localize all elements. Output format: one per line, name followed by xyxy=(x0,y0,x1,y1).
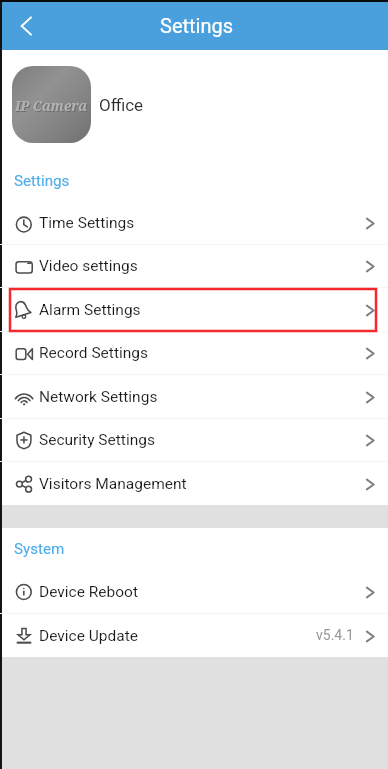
button[interactable]: Device Update xyxy=(0,614,388,658)
staticText: IP Camera xyxy=(15,97,88,115)
staticText: v5.4.1 xyxy=(316,627,354,643)
button[interactable]: Security Settings xyxy=(0,418,388,462)
button[interactable]: Record Settings xyxy=(0,331,388,375)
staticText: Settings xyxy=(14,172,70,190)
staticText: Device Update xyxy=(39,627,138,645)
staticText: Visitors Management xyxy=(39,475,187,493)
button[interactable]: Device Reboot xyxy=(0,570,388,614)
staticText: Settings xyxy=(160,14,234,37)
staticText: Time Settings xyxy=(39,214,135,232)
staticText: IP Camera xyxy=(16,98,89,116)
button[interactable]: Time Settings xyxy=(0,201,388,245)
staticText: Video settings xyxy=(39,257,138,275)
staticText: Device Reboot xyxy=(39,583,138,601)
staticText: System xyxy=(14,540,65,558)
staticText: Alarm Settings xyxy=(39,301,141,319)
button[interactable]: Alarm Settings xyxy=(0,288,388,332)
button[interactable]: Video settings xyxy=(0,244,388,288)
staticText: Network Settings xyxy=(39,388,158,406)
button[interactable]: Visitors Management xyxy=(0,462,388,506)
staticText: Office xyxy=(99,95,144,115)
staticText: Security Settings xyxy=(39,431,155,449)
button[interactable]: Network Settings xyxy=(0,375,388,419)
button[interactable]: Back xyxy=(4,4,48,48)
staticText: Record Settings xyxy=(39,344,149,362)
button[interactable]: IP Camera xyxy=(12,66,91,143)
